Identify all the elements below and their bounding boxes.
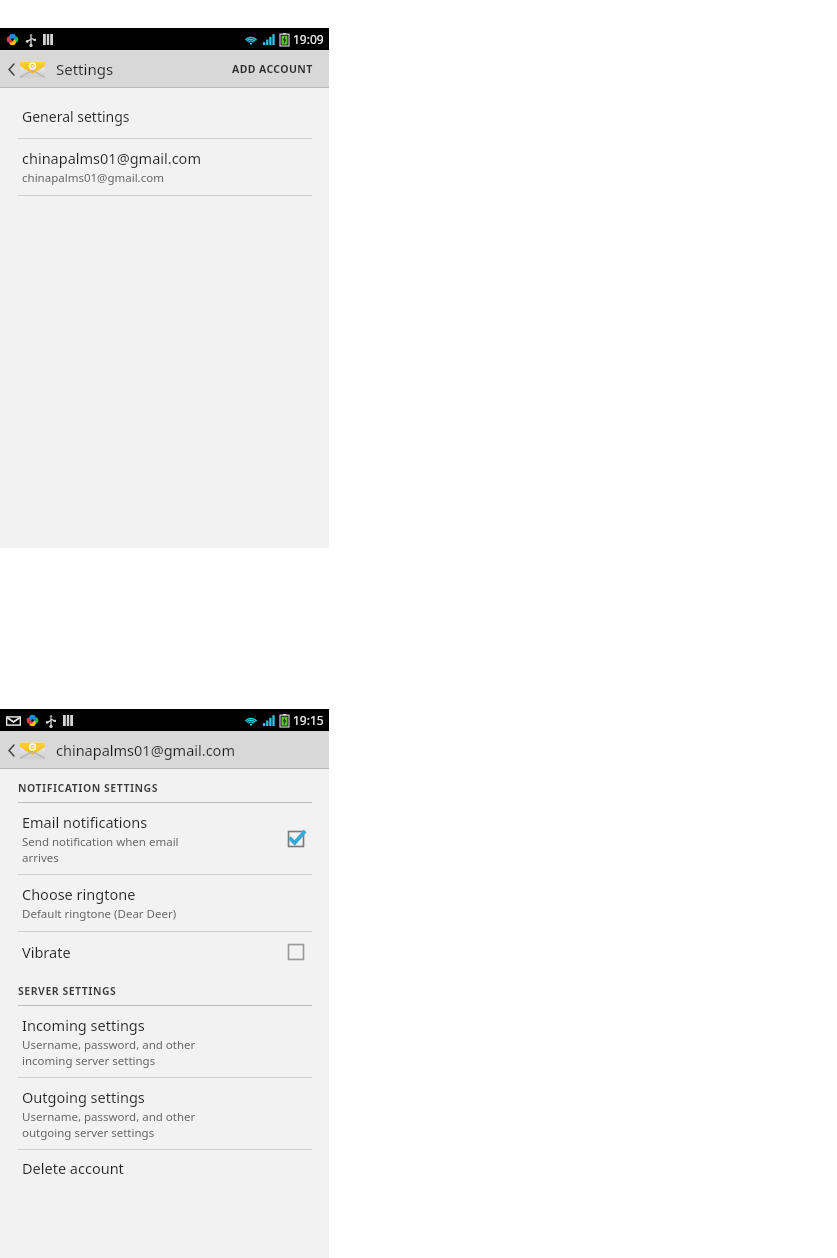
staticText: NOTIFICATION SETTINGS	[18, 781, 159, 795]
staticText: Incoming settings	[22, 1015, 145, 1035]
button[interactable]: Vibrate	[0, 932, 329, 972]
staticText: SERVER SETTINGS	[18, 984, 117, 998]
button[interactable]: Incoming settings	[0, 1006, 329, 1077]
staticText: Default ringtone (Dear Deer)	[22, 906, 177, 922]
staticText: chinapalms01@gmail.com	[22, 170, 164, 186]
button[interactable]: Navigate up	[5, 736, 48, 764]
button[interactable]: ADD ACCOUNT	[222, 56, 323, 82]
staticText: ADD ACCOUNT	[232, 62, 313, 76]
staticText: Settings	[56, 59, 114, 79]
staticText: Email notifications	[22, 812, 148, 832]
staticText: 19:15	[293, 712, 324, 728]
staticText: Username, password, and other outgoing s…	[22, 1109, 196, 1140]
button[interactable]: Navigate up	[5, 55, 48, 83]
button[interactable]: Delete account	[0, 1150, 329, 1190]
button[interactable]: Email notifications	[0, 803, 329, 874]
button[interactable]: chinapalms01@gmail.com	[0, 139, 329, 195]
staticText: Vibrate	[22, 942, 71, 962]
button[interactable]: General settings	[0, 98, 329, 138]
staticText: General settings	[22, 107, 130, 126]
staticText: Delete account	[22, 1158, 124, 1178]
staticText: Choose ringtone	[22, 884, 136, 904]
staticText: chinapalms01@gmail.com	[22, 148, 201, 168]
staticText: Username, password, and other incoming s…	[22, 1037, 196, 1068]
staticText: chinapalms01@gmail.com	[56, 740, 235, 760]
staticText: 19:09	[293, 31, 324, 47]
button[interactable]: Choose ringtone	[0, 875, 329, 931]
staticText: Outgoing settings	[22, 1087, 145, 1107]
staticText: Send notification when email arrives	[22, 834, 179, 865]
button[interactable]: Outgoing settings	[0, 1078, 329, 1149]
